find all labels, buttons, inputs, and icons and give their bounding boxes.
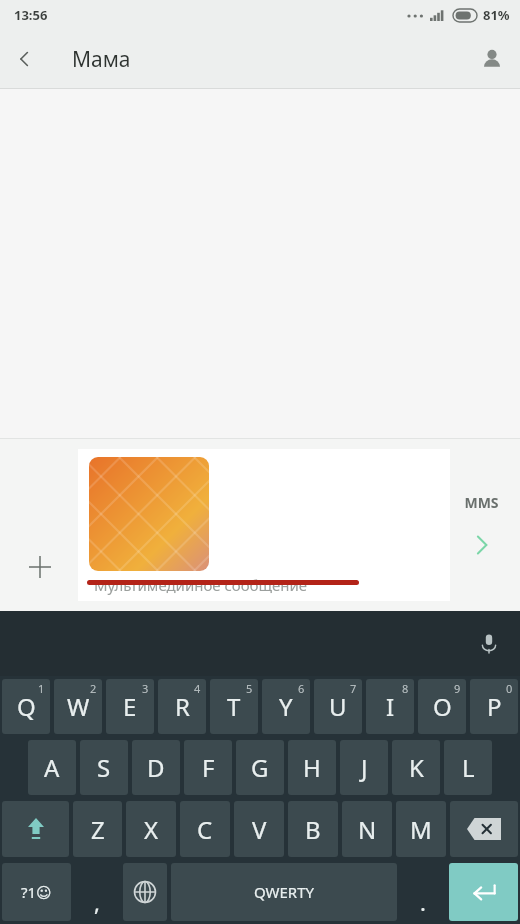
staticText: X: [144, 813, 159, 846]
button[interactable]: T: [210, 679, 258, 734]
staticText: 1: [38, 681, 45, 696]
button[interactable]: ?1☺: [2, 863, 71, 921]
button[interactable]: I: [366, 679, 414, 734]
button[interactable]: Backspace: [450, 801, 518, 857]
button[interactable]: W: [54, 679, 102, 734]
staticText: 5: [246, 681, 253, 696]
staticText: B: [305, 813, 321, 846]
staticText: P: [487, 690, 502, 723]
staticText: L: [462, 751, 475, 784]
button[interactable]: C: [180, 801, 230, 857]
staticText: I: [386, 690, 395, 723]
staticText: J: [361, 751, 368, 784]
button[interactable]: B: [288, 801, 338, 857]
button[interactable]: K: [392, 740, 440, 795]
staticText: Y: [279, 690, 293, 723]
staticText: 3: [142, 681, 149, 696]
button[interactable]: Change language: [123, 863, 167, 921]
staticText: ?1☺: [21, 882, 52, 902]
staticText: .: [420, 887, 426, 917]
button[interactable]: H: [288, 740, 336, 795]
button[interactable]: Y: [262, 679, 310, 734]
button[interactable]: A: [28, 740, 76, 795]
staticText: V: [252, 813, 267, 846]
button[interactable]: E: [106, 679, 154, 734]
staticText: Мультимедийное сообщение: [94, 575, 308, 595]
staticText: O: [433, 690, 452, 723]
staticText: MMS: [464, 493, 499, 512]
button[interactable]: F: [184, 740, 232, 795]
staticText: Z: [91, 813, 105, 846]
button[interactable]: Мультимедийное сообщение: [78, 449, 450, 601]
staticText: T: [227, 690, 241, 723]
staticText: M: [410, 813, 432, 846]
staticText: ,: [94, 887, 100, 917]
button[interactable]: N: [342, 801, 392, 857]
button[interactable]: MMS: [450, 493, 512, 558]
staticText: K: [409, 751, 424, 784]
button[interactable]: P: [470, 679, 518, 734]
button[interactable]: Z: [73, 801, 122, 857]
button[interactable]: Q: [2, 679, 50, 734]
staticText: 9: [454, 681, 461, 696]
staticText: G: [251, 751, 269, 784]
staticText: W: [67, 690, 90, 723]
button[interactable]: .: [401, 863, 445, 921]
staticText: Мама: [72, 45, 131, 74]
button[interactable]: Add attachment: [14, 541, 66, 593]
staticText: A: [44, 751, 60, 784]
button[interactable]: V: [234, 801, 284, 857]
button[interactable]: U: [314, 679, 362, 734]
staticText: R: [175, 690, 190, 723]
button[interactable]: Shift: [2, 801, 69, 857]
button[interactable]: G: [236, 740, 284, 795]
button[interactable]: J: [340, 740, 388, 795]
staticText: Q: [17, 690, 36, 723]
staticText: 13:56: [14, 6, 48, 24]
staticText: QWERTY: [254, 882, 315, 902]
button[interactable]: M: [396, 801, 446, 857]
button[interactable]: ,: [75, 863, 119, 921]
staticText: 4: [194, 681, 201, 696]
button[interactable]: Back: [0, 34, 50, 84]
staticText: 7: [350, 681, 357, 696]
button[interactable]: S: [80, 740, 128, 795]
button[interactable]: Voice input: [466, 621, 512, 667]
button[interactable]: Contact info: [464, 31, 520, 87]
button[interactable]: X: [126, 801, 176, 857]
button[interactable]: R: [158, 679, 206, 734]
button[interactable]: L: [444, 740, 492, 795]
staticText: N: [358, 813, 377, 846]
button[interactable]: O: [418, 679, 466, 734]
staticText: 2: [90, 681, 97, 696]
staticText: 6: [298, 681, 305, 696]
staticText: S: [97, 751, 111, 784]
button[interactable]: D: [132, 740, 180, 795]
staticText: 81%: [483, 6, 510, 24]
button[interactable]: Enter: [449, 863, 518, 921]
staticText: C: [197, 813, 213, 846]
staticText: F: [202, 751, 215, 784]
staticText: H: [303, 751, 321, 784]
staticText: 8: [402, 681, 409, 696]
button[interactable]: QWERTY: [171, 863, 397, 921]
staticText: D: [147, 751, 165, 784]
staticText: 0: [506, 681, 513, 696]
staticText: E: [123, 690, 137, 723]
staticText: U: [329, 690, 347, 723]
